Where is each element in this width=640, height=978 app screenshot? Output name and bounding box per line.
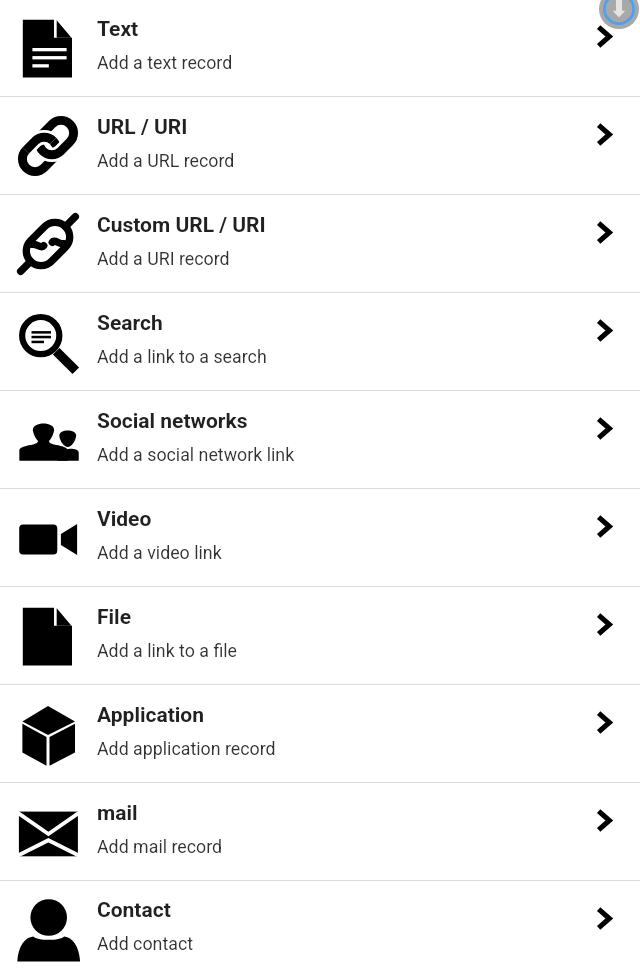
- staticText: Add a text record: [97, 52, 233, 73]
- button[interactable]: Video: [0, 489, 640, 586]
- button[interactable]: Application: [0, 685, 640, 782]
- staticText: Search: [97, 311, 163, 336]
- staticText: Video: [97, 507, 152, 532]
- staticText: Contact: [97, 898, 171, 923]
- button[interactable]: Search: [0, 293, 640, 390]
- staticText: URL / URI: [97, 115, 188, 140]
- button[interactable]: Contact: [0, 881, 640, 977]
- staticText: mail: [97, 801, 138, 826]
- staticText: Application: [97, 703, 204, 728]
- staticText: Add mail record: [97, 836, 223, 857]
- button[interactable]: mail: [0, 783, 640, 880]
- button[interactable]: Social networks: [0, 391, 640, 488]
- button[interactable]: File: [0, 587, 640, 684]
- staticText: Add a link to a file: [97, 640, 238, 661]
- staticText: Add a social network link: [97, 444, 295, 465]
- staticText: Add a URL record: [97, 150, 235, 171]
- staticText: Social networks: [97, 409, 248, 434]
- staticText: Add a video link: [97, 542, 222, 563]
- staticText: Custom URL / URI: [97, 213, 266, 238]
- button[interactable]: Custom URL / URI: [0, 195, 640, 292]
- staticText: Text: [97, 17, 139, 42]
- staticText: File: [97, 605, 131, 630]
- button[interactable]: URL / URI: [0, 97, 640, 194]
- staticText: Add a URI record: [97, 248, 230, 269]
- staticText: Add contact: [97, 933, 194, 954]
- button[interactable]: Download: [599, 0, 639, 29]
- staticText: Add application record: [97, 738, 276, 759]
- button[interactable]: Text: [0, 0, 640, 96]
- staticText: Add a link to a search: [97, 346, 267, 367]
